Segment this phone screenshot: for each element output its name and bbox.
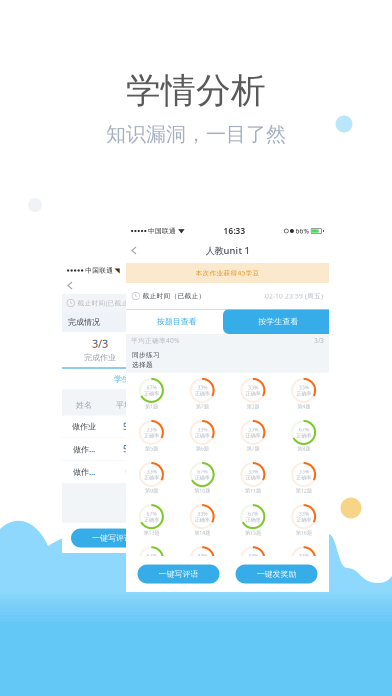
staticText: 第7题 (246, 445, 259, 452)
staticText: 做作... (73, 466, 95, 477)
staticText: 做作业 (72, 422, 96, 431)
staticText: 同步练习 (132, 351, 160, 359)
staticText: 第11题 (245, 487, 261, 494)
staticText: 33% (299, 552, 309, 559)
staticText: 67% (146, 552, 156, 559)
staticText: 正确率 (245, 601, 260, 607)
staticText: 按学生查看 (258, 317, 298, 326)
staticText: 3/3 (314, 336, 324, 345)
staticText: 选择题 (132, 361, 153, 369)
staticText: 33% (248, 552, 258, 559)
staticText: 正确率 (245, 390, 260, 397)
staticText: 第2题 (196, 403, 209, 410)
staticText: 正确率 (195, 432, 210, 439)
button[interactable]: Back (126, 241, 142, 260)
staticText: ◥ (114, 267, 119, 274)
staticText: 67% (248, 510, 258, 517)
staticText: 33% (146, 468, 156, 475)
staticText: 正确率 (296, 475, 311, 481)
staticText: 正确率 (144, 559, 159, 565)
staticText: 33% (197, 426, 207, 433)
staticText: 正确率 (144, 390, 159, 397)
staticText: 正确率 (195, 475, 210, 481)
staticText: 第8题 (297, 445, 310, 452)
staticText: 67% (299, 426, 309, 433)
staticText: 正确率 (144, 601, 159, 607)
staticText: 50 (123, 421, 133, 432)
staticText: 33% (248, 468, 258, 475)
button[interactable]: 一键写评语 (137, 564, 219, 583)
staticText: 33 (170, 336, 182, 351)
staticText: 中国联通 (148, 227, 176, 235)
staticText: 正确率 (296, 601, 311, 607)
staticText: 33% (146, 426, 156, 433)
staticText: 中国联通 (85, 266, 113, 275)
staticText: 学情分析 (126, 69, 266, 112)
staticText: 正确率 (296, 390, 311, 397)
staticText: 正确率 (195, 390, 210, 397)
staticText: 平均正确率40% (131, 336, 180, 345)
button[interactable]: 按学生查看 (227, 309, 329, 334)
staticText: 一键发奖励 (256, 569, 296, 579)
staticText: 第19题 (245, 571, 261, 578)
staticText: 正确率 (144, 475, 159, 481)
staticText: 67% (146, 510, 156, 517)
staticText: 正确率 (144, 517, 159, 523)
staticText: 平均分 (116, 400, 140, 410)
staticText: 33% (299, 510, 309, 517)
staticText: 正确率 (245, 432, 260, 439)
staticText: 第5题 (145, 445, 158, 452)
staticText: 50 (123, 444, 133, 454)
staticText: 正确率 (245, 517, 260, 523)
staticText: 正确率 (296, 432, 311, 439)
staticText: 33% (299, 468, 309, 475)
staticText: 67% (197, 468, 207, 475)
staticText: 第9题 (145, 487, 158, 494)
button[interactable]: 一键发奖励 (235, 564, 317, 583)
staticText: 第16题 (296, 529, 312, 536)
staticText: 67% (146, 384, 156, 391)
staticText: 第12题 (296, 487, 312, 494)
staticText: 第21题 (143, 613, 159, 620)
staticText: 正确率 (245, 475, 260, 481)
staticText: 第24题 (296, 613, 312, 620)
staticText: 截止时间（已截止） (142, 292, 205, 300)
staticText: 人教unit 1 (205, 244, 249, 257)
staticText: 33% (197, 384, 207, 391)
staticText: 33% (197, 510, 207, 517)
staticText: 第6题 (196, 445, 209, 452)
staticText: 完成情况 (68, 317, 100, 327)
staticText: 第14题 (194, 529, 210, 536)
staticText: 截止时间(已截止) (77, 299, 130, 307)
staticText: 第13题 (143, 529, 159, 536)
staticText: 知识漏洞，一目了然 (106, 122, 286, 147)
staticText: 正确率 (195, 517, 210, 523)
staticText: 第18题 (194, 571, 210, 578)
staticText: 正确率 (296, 559, 311, 565)
staticText: 本次作业获得45学豆 (195, 269, 259, 277)
staticText: 一键写评语 (92, 533, 132, 543)
staticText: 第22题 (194, 613, 210, 620)
button[interactable]: 一键写评语 (71, 528, 153, 547)
staticText: 一键写评语 (158, 569, 198, 579)
staticText: 学生完成情况 (114, 374, 162, 384)
staticText: 第4题 (297, 403, 310, 410)
staticText: 02-10 23:59 (周五) (265, 292, 323, 300)
staticText: 33% (248, 384, 258, 391)
staticText: 正确率 (195, 559, 210, 565)
staticText: 姓名 (76, 400, 92, 410)
staticText: 3/3 (92, 336, 108, 351)
staticText: 做作... (73, 444, 95, 454)
staticText: 正确率 (195, 601, 210, 607)
staticText: 正确率 (245, 559, 260, 565)
staticText: 正确率 (144, 432, 159, 439)
staticText: 33% (197, 552, 207, 559)
button[interactable]: 按题目查看 (126, 309, 227, 334)
